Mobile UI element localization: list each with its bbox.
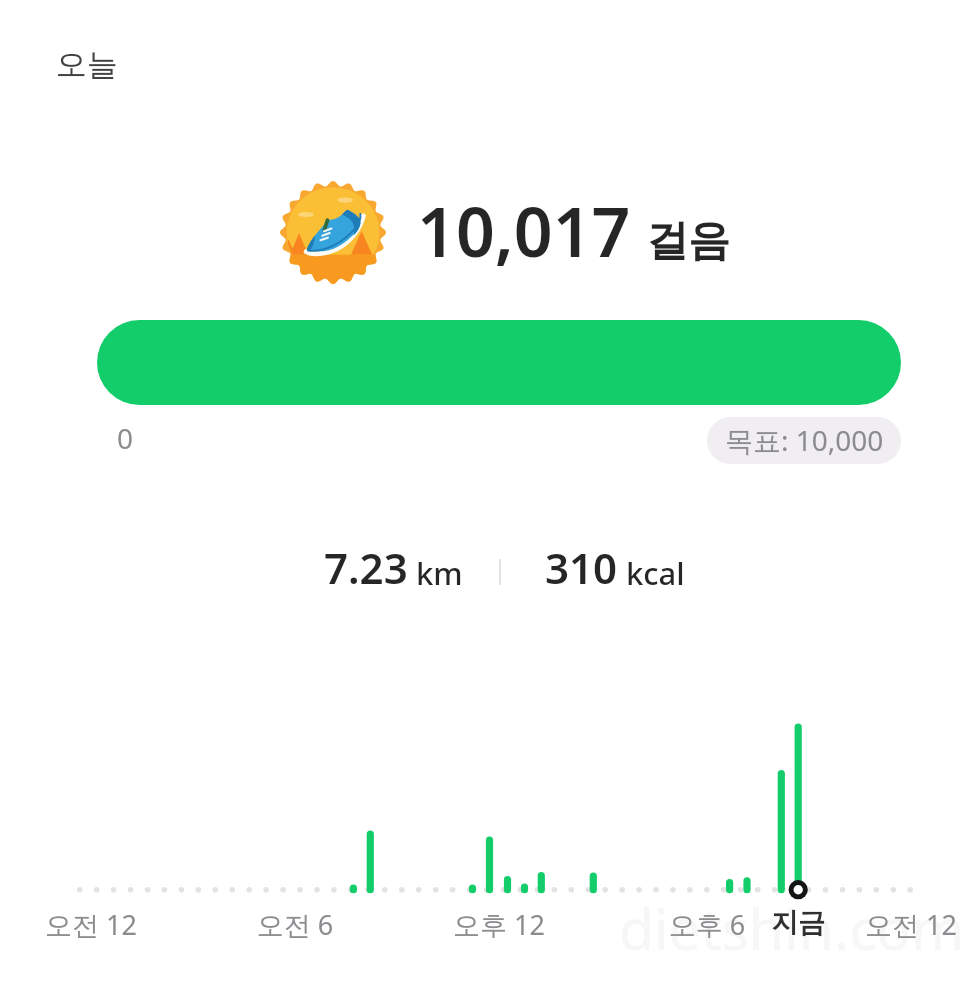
staticText: 오후 12 (409, 906, 589, 943)
button[interactable]: 오늘 (56, 45, 118, 84)
staticText: 목표: 10,000 (725, 421, 884, 459)
staticText: 오전 12 (1, 906, 181, 943)
staticText: 10,017 (417, 184, 631, 277)
button[interactable]: 시간대별 걸음 수 그래프 (60, 700, 940, 900)
button[interactable]: 10,017 (417, 184, 730, 277)
button[interactable]: 7.23 (324, 539, 463, 596)
staticText: 310 (545, 539, 618, 596)
button[interactable]: 310 (545, 539, 685, 596)
button[interactable] (97, 320, 901, 405)
staticText: 오전 12 (821, 906, 960, 943)
staticText: 0 (117, 419, 134, 457)
staticText: 오늘 (56, 45, 118, 84)
staticText: dietshin.com (619, 889, 960, 967)
button[interactable]: 걸음 수 배지 (280, 181, 386, 284)
staticText: kcal (626, 552, 685, 594)
staticText: 지금 (708, 906, 888, 940)
button[interactable]: 목표: 10,000 (707, 417, 901, 464)
staticText: 오전 6 (205, 906, 385, 943)
staticText: 걸음 (646, 215, 730, 268)
staticText: 7.23 (324, 539, 408, 596)
staticText: km (416, 552, 463, 594)
staticText: 오후 6 (617, 906, 797, 943)
